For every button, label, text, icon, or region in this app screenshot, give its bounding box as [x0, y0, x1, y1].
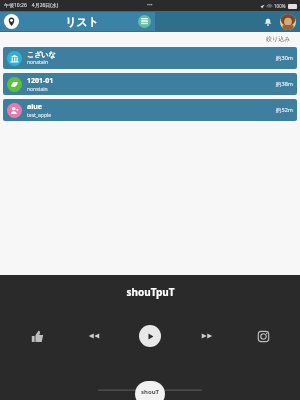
staticText: aiue — [27, 102, 43, 112]
button[interactable]: Profile — [280, 14, 296, 30]
staticText: 約52m — [276, 106, 293, 114]
button[interactable]: 絞り込み — [262, 34, 295, 44]
button[interactable]: Rewind — [83, 325, 105, 347]
staticText: test_apple — [27, 112, 52, 119]
button[interactable]: Play — [139, 325, 161, 347]
button[interactable]: shouT home — [135, 381, 165, 400]
button[interactable]: aiue — [3, 99, 297, 121]
staticText: nonstain — [27, 86, 48, 93]
staticText: shouT — [141, 388, 160, 396]
button[interactable]: こざいな — [3, 47, 297, 69]
staticText: 午後10:26 4月26日(水) — [4, 2, 59, 9]
staticText: ••• — [147, 2, 153, 9]
button[interactable]: 1201-01 — [3, 73, 297, 95]
staticText: 100% — [274, 3, 286, 9]
button[interactable]: Like — [26, 325, 48, 347]
staticText: nonatain — [27, 59, 49, 66]
staticText: 約38m — [276, 80, 293, 88]
staticText: こざいな — [27, 50, 56, 59]
button[interactable]: Instagram — [252, 325, 274, 347]
button[interactable]: List view — [138, 15, 151, 28]
staticText: shouTpuT — [126, 285, 175, 299]
staticText: 絞り込み — [266, 35, 291, 43]
staticText: 約30m — [276, 54, 293, 62]
button[interactable]: Notifications — [261, 15, 275, 29]
button[interactable]: Location — [4, 14, 19, 29]
staticText: 1201-01 — [27, 76, 54, 86]
button[interactable]: Fast forward — [196, 325, 218, 347]
staticText: リスト — [65, 15, 99, 29]
